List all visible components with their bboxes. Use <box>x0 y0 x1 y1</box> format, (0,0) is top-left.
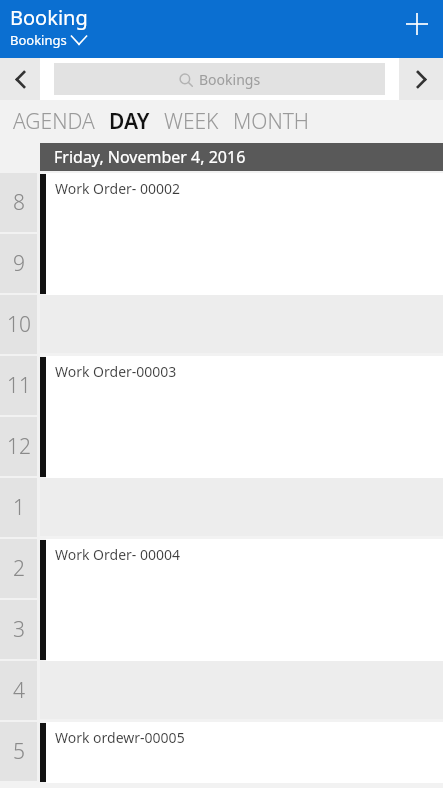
button[interactable]: AGENDA <box>13 107 95 136</box>
staticText: AGENDA <box>13 107 95 136</box>
staticText: WEEK <box>164 107 219 136</box>
button[interactable] <box>40 234 443 295</box>
button[interactable]: WEEK <box>164 107 219 136</box>
button[interactable]: Friday, November 4, 2016 <box>40 143 443 171</box>
staticText: 10 <box>7 310 31 339</box>
button[interactable]: Work Order-00003 <box>40 356 443 417</box>
staticText: Work Order-00003 <box>55 362 177 381</box>
button[interactable] <box>40 417 443 478</box>
button[interactable]: Bookings <box>54 63 385 95</box>
staticText: 8 <box>13 188 25 217</box>
staticText: 12 <box>7 432 31 461</box>
staticText: 9 <box>13 249 25 278</box>
staticText: Bookings <box>10 31 67 49</box>
staticText: Work Order- 00002 <box>55 179 181 198</box>
button[interactable]: Add booking <box>391 0 443 48</box>
staticText: 11 <box>7 371 31 400</box>
button[interactable] <box>40 600 443 661</box>
button[interactable]: Booking <box>10 4 88 49</box>
staticText: Work Order- 00004 <box>55 545 181 564</box>
staticText: 2 <box>13 554 25 583</box>
staticText: MONTH <box>233 107 310 136</box>
staticText: Booking <box>10 4 88 31</box>
staticText: 1 <box>13 493 25 522</box>
staticText: DAY <box>109 107 150 136</box>
staticText: 4 <box>13 676 25 705</box>
staticText: 5 <box>13 737 25 766</box>
button[interactable]: Work ordewr-00005 <box>40 722 443 783</box>
button[interactable]: Previous day <box>0 58 40 100</box>
button[interactable]: Work Order- 00004 <box>40 539 443 600</box>
button[interactable]: Work Order- 00002 <box>40 173 443 234</box>
button[interactable]: DAY <box>109 107 150 136</box>
staticText: 3 <box>13 615 25 644</box>
staticText: Work ordewr-00005 <box>55 728 185 747</box>
button[interactable]: MONTH <box>233 107 310 136</box>
staticText: Bookings <box>199 70 261 89</box>
button[interactable]: Next day <box>399 58 443 100</box>
staticText: Friday, November 4, 2016 <box>54 146 246 168</box>
